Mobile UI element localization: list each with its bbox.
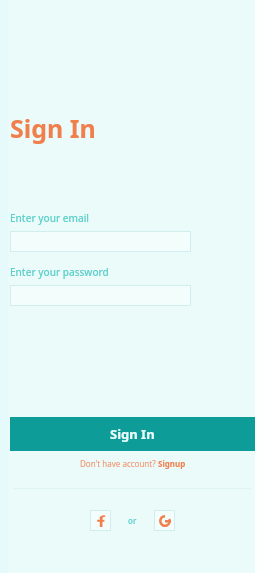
button[interactable]	[10, 231, 191, 252]
button[interactable]: Sign in with Facebook	[90, 510, 111, 531]
button[interactable]: Signup	[158, 458, 186, 469]
staticText: Enter your email	[10, 211, 90, 225]
button[interactable]: Sign in with Google	[154, 510, 175, 531]
button[interactable]: Sign In	[10, 417, 255, 451]
staticText: Sign In	[10, 111, 96, 145]
button[interactable]	[10, 285, 191, 306]
staticText: or	[128, 515, 137, 526]
staticText: Sign In	[110, 425, 155, 443]
staticText: Enter your password	[10, 265, 109, 279]
staticText: Signup	[158, 458, 186, 469]
staticText: Don't have account?	[80, 458, 158, 469]
